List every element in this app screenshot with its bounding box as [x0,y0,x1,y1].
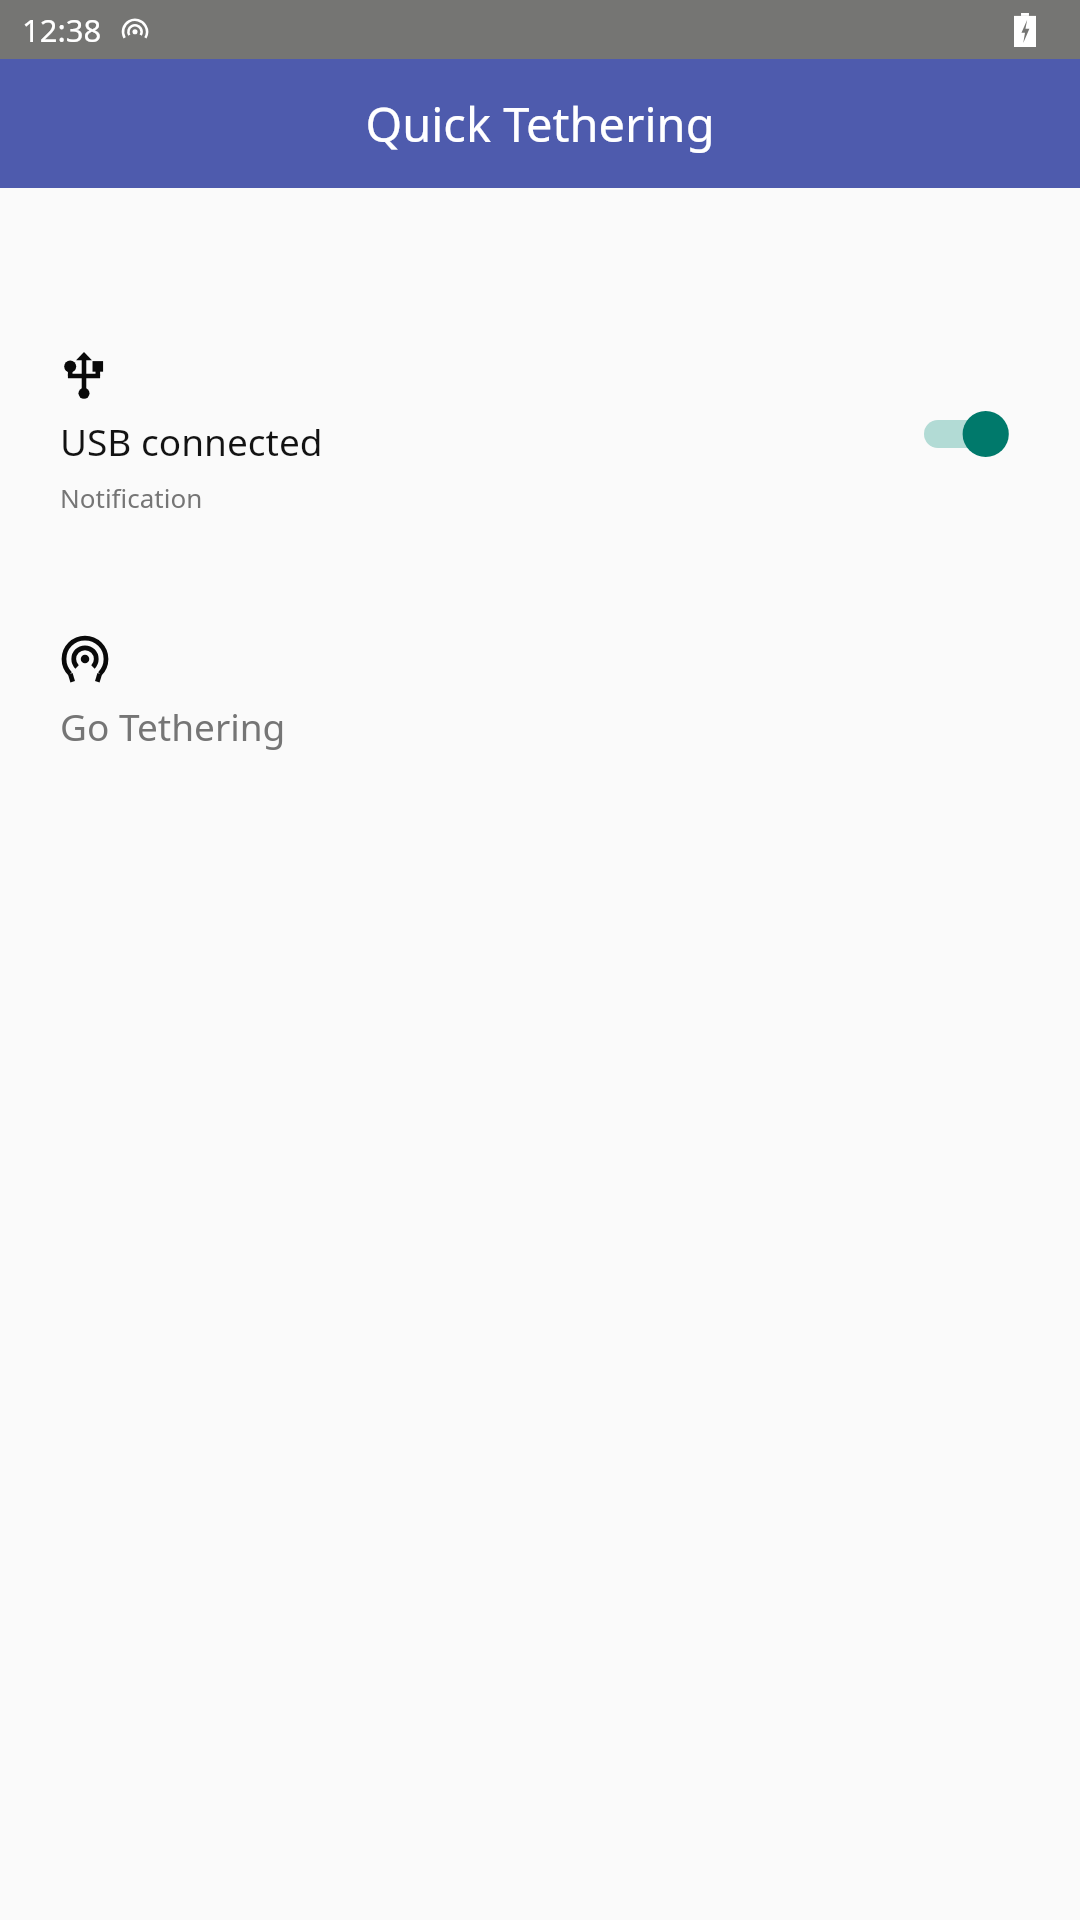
staticText: USB connected [60,416,323,466]
button[interactable]: USB connected notification toggle [924,404,1020,464]
button[interactable]: USB connected [0,352,1080,515]
staticText: Go Tethering [60,701,286,751]
staticText: Notification [60,480,203,515]
staticText: 12:38 [22,9,102,51]
button[interactable]: Go Tethering [0,633,1080,751]
staticText: Quick Tethering [365,92,715,156]
